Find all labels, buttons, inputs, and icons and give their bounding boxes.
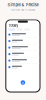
staticText: Simple & bbox=[7, 2, 25, 7]
button[interactable] bbox=[6, 38, 39, 44]
button[interactable] bbox=[6, 31, 39, 38]
staticText: Today bbox=[8, 23, 18, 28]
button[interactable] bbox=[6, 57, 39, 64]
button[interactable] bbox=[6, 51, 39, 57]
button[interactable] bbox=[6, 44, 39, 51]
button[interactable] bbox=[6, 64, 39, 70]
staticText: Precise bbox=[25, 2, 38, 7]
staticText: + bbox=[21, 80, 24, 85]
staticText: Plan your day in seconds bbox=[11, 8, 35, 11]
button[interactable]: Add task bbox=[21, 80, 25, 85]
